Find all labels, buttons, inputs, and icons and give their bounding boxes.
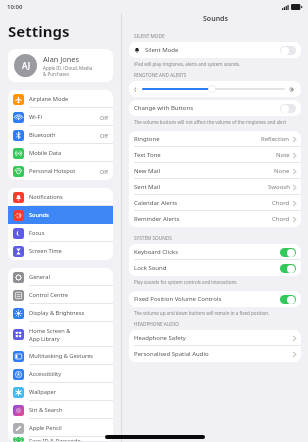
staticText: Fixed Position Volume Controls — [134, 295, 280, 303]
button[interactable]: Text Tone — [129, 147, 301, 163]
button[interactable]: Control Centre — [8, 286, 113, 304]
staticText: Silent Mode — [145, 46, 280, 54]
button[interactable]: Mobile Data — [8, 144, 113, 162]
button[interactable]: Home Screen & — [8, 322, 113, 347]
staticText: Off — [100, 168, 108, 175]
staticText: & Purchases — [43, 71, 70, 77]
staticText: App Library — [29, 335, 60, 343]
staticText: General — [29, 273, 50, 281]
staticText: Face ID & Passcode — [29, 437, 81, 442]
staticText: Sent Mail — [134, 183, 268, 191]
button[interactable]: Headphone Safety — [129, 330, 301, 346]
staticText: Bluetooth — [29, 131, 56, 139]
staticText: Off — [100, 132, 108, 139]
button[interactable]: General — [8, 268, 113, 286]
button[interactable]: Sent Mail — [129, 179, 301, 195]
button[interactable]: Wi-Fi — [8, 108, 113, 126]
button[interactable]: Reminder Alerts — [129, 211, 301, 227]
button[interactable]: Change with Buttons — [129, 100, 301, 116]
button[interactable]: Silent Mode toggle — [280, 46, 296, 55]
button[interactable]: Fixed Position Volume Controls — [129, 291, 301, 307]
button[interactable]: Lock Sound toggle — [280, 264, 296, 273]
staticText: Text Tone — [134, 151, 276, 159]
staticText: Change with Buttons — [134, 104, 280, 112]
button[interactable]: Airplane Mode — [8, 90, 113, 108]
button[interactable]: Lock Sound — [129, 260, 301, 276]
staticText: Siri & Search — [29, 406, 63, 414]
button[interactable]: Keyboard Clicks — [129, 244, 301, 260]
button[interactable]: Display & Brightness — [8, 304, 113, 322]
staticText: Screen Time — [29, 247, 62, 255]
button[interactable]: New Mail — [129, 163, 301, 179]
staticText: Chord — [272, 215, 290, 223]
button[interactable]: Face ID & Passcode — [8, 437, 113, 442]
button[interactable]: Screen Time — [8, 242, 113, 260]
staticText: None — [274, 167, 290, 175]
staticText: Apple Pencil — [29, 424, 62, 432]
button[interactable]: Wallpaper — [8, 383, 113, 401]
staticText: Home Screen & — [29, 327, 71, 335]
staticText: Multitasking & Gestures — [29, 352, 94, 360]
staticText: Apple ID, iCloud, Media — [43, 65, 93, 71]
staticText: SYSTEM SOUNDS — [134, 235, 172, 241]
staticText: Display & Brightness — [29, 309, 85, 317]
staticText: SILENT MODE — [134, 33, 165, 39]
staticText: The volume buttons will not affect the v… — [134, 119, 287, 125]
staticText: 10:00 — [7, 3, 23, 11]
staticText: HEADPHONE AUDIO — [134, 321, 179, 327]
button[interactable]: Notifications — [8, 188, 113, 206]
staticText: AJ — [22, 60, 30, 71]
button[interactable]: Apple Pencil — [8, 419, 113, 437]
staticText: Sounds — [203, 14, 228, 24]
staticText: Chord — [272, 199, 290, 207]
staticText: Control Centre — [29, 291, 69, 299]
staticText: Mobile Data — [29, 149, 62, 157]
staticText: Notifications — [29, 193, 63, 201]
staticText: Sounds — [29, 211, 49, 219]
staticText: RINGTONE AND ALERTS — [134, 72, 187, 78]
button[interactable]: Bluetooth — [8, 126, 113, 144]
staticText: Calendar Alerts — [134, 199, 272, 207]
staticText: Reminder Alerts — [134, 215, 272, 223]
button[interactable]: Focus — [8, 224, 113, 242]
staticText: Play sounds for system controls and inte… — [134, 279, 238, 285]
staticText: iPad will play ringtones, alerts and sys… — [134, 61, 241, 67]
button[interactable]: Change with Buttons toggle — [280, 104, 296, 113]
staticText: Settings — [8, 21, 70, 41]
button[interactable]: Fixed Position Volume Controls toggle — [280, 295, 296, 304]
button[interactable]: Sounds — [8, 206, 113, 224]
button[interactable]: Ringtone — [129, 131, 301, 147]
staticText: Reflection — [261, 135, 290, 143]
staticText: Swoosh — [268, 183, 290, 191]
staticText: Ringtone — [134, 135, 261, 143]
staticText: The volume up and down buttons will rema… — [134, 310, 270, 316]
staticText: Off — [100, 114, 108, 121]
staticText: Airplane Mode — [29, 95, 69, 103]
button[interactable]: Silent Mode — [129, 42, 301, 58]
button[interactable]: Calendar Alerts — [129, 195, 301, 211]
staticText: Note — [276, 151, 290, 159]
button[interactable]: Personalised Spatial Audio — [129, 346, 301, 362]
staticText: Accessibility — [29, 370, 62, 378]
staticText: New Mail — [134, 167, 274, 175]
staticText: Headphone Safety — [134, 334, 293, 342]
button[interactable]: Personal Hotspot — [8, 162, 113, 180]
staticText: Alan Jones — [43, 54, 80, 64]
staticText: Focus — [29, 229, 45, 237]
button[interactable]: Multitasking & Gestures — [8, 347, 113, 365]
staticText: Wi-Fi — [29, 113, 43, 121]
staticText: Lock Sound — [134, 264, 280, 272]
staticText: Personal Hotspot — [29, 167, 76, 175]
staticText: Personalised Spatial Audio — [134, 350, 293, 358]
button[interactable]: Accessibility — [8, 365, 113, 383]
button[interactable]: Keyboard Clicks toggle — [280, 248, 296, 257]
button[interactable]: AJ — [8, 49, 113, 82]
staticText: Wallpaper — [29, 388, 57, 396]
button[interactable]: Siri & Search — [8, 401, 113, 419]
staticText: Keyboard Clicks — [134, 248, 280, 256]
